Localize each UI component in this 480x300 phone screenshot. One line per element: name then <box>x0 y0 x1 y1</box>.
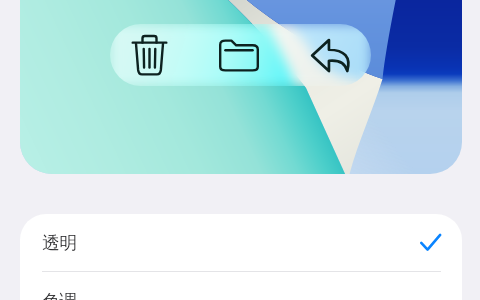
button[interactable]: Move to folder <box>194 24 284 86</box>
button[interactable]: 透明 <box>20 214 462 271</box>
staticText: 色调 <box>42 290 77 300</box>
button[interactable]: Delete <box>110 24 194 86</box>
button[interactable]: 色调 <box>20 272 462 300</box>
staticText: 透明 <box>42 232 77 254</box>
button[interactable]: Undo <box>284 24 371 86</box>
